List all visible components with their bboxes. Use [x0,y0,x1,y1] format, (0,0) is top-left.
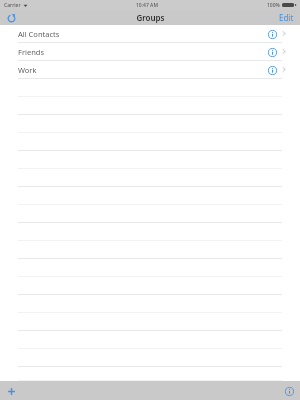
button[interactable]: Add group [3,383,19,399]
staticText: Groups [136,12,165,23]
staticText: Edit [279,12,294,23]
button[interactable]: Friends [0,43,300,60]
button[interactable]: More info about Friends [265,45,279,59]
button[interactable]: More info about Work [265,63,279,77]
staticText: Carrier [4,2,21,9]
button[interactable]: More info about All Contacts [265,27,279,41]
button[interactable]: Refresh [4,11,18,25]
staticText: Work [18,65,37,75]
staticText: Friends [18,47,44,57]
button[interactable]: Work [0,61,300,78]
button[interactable]: Edit [273,10,300,25]
button[interactable]: Info [281,383,297,399]
staticText: 10:47 AM [136,2,158,9]
staticText: All Contacts [18,29,60,39]
staticText: 100% [267,2,280,9]
button[interactable]: All Contacts [0,25,300,42]
